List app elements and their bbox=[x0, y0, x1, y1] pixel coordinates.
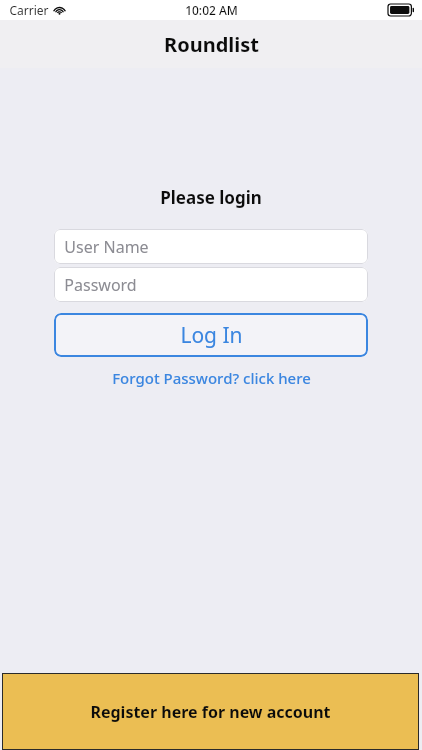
other: Wi-Fi bbox=[53, 5, 66, 15]
staticText: Register here for new account bbox=[90, 701, 331, 723]
staticText: Log In bbox=[180, 321, 243, 350]
staticText: Password bbox=[64, 274, 137, 296]
staticText: Please login bbox=[160, 186, 262, 209]
staticText: Forgot Password? click here bbox=[112, 368, 311, 388]
button[interactable]: Register here for new account bbox=[2, 673, 419, 750]
button[interactable]: User Name bbox=[54, 229, 368, 264]
staticText: Roundlist bbox=[164, 31, 259, 58]
button[interactable]: Forgot Password? click here bbox=[54, 366, 368, 390]
staticText: User Name bbox=[64, 236, 149, 258]
staticText: 10:02 AM bbox=[185, 2, 238, 18]
staticText: Carrier bbox=[9, 2, 49, 18]
button[interactable]: Password bbox=[54, 267, 368, 302]
button[interactable]: Log In bbox=[54, 313, 368, 357]
other: Battery full bbox=[388, 4, 414, 16]
